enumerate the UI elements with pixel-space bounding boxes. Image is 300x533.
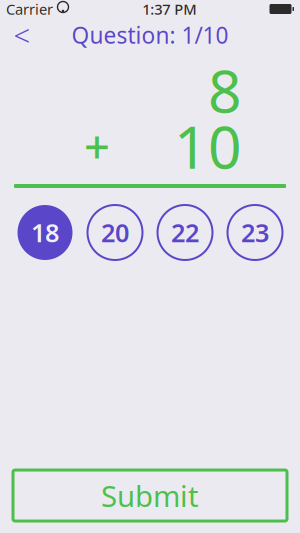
staticText: 1:37 PM <box>142 0 196 19</box>
staticText: Carrier <box>6 0 53 19</box>
button[interactable]: 22 <box>157 205 212 260</box>
staticText: 18 <box>31 216 59 249</box>
staticText: Question: 1/10 <box>71 20 228 50</box>
staticText: Submit <box>101 476 199 515</box>
staticText: 22 <box>171 216 199 249</box>
staticText: 8 <box>208 51 242 129</box>
button[interactable]: 18 <box>17 205 72 260</box>
staticText: + <box>84 116 110 176</box>
button[interactable]: Submit <box>13 470 287 521</box>
button[interactable]: 23 <box>227 205 282 260</box>
staticText: 23 <box>241 216 269 249</box>
button[interactable]: Back <box>0 18 44 52</box>
staticText: 20 <box>101 216 129 249</box>
staticText: < <box>13 15 30 54</box>
button[interactable]: 20 <box>87 205 142 260</box>
staticText: 10 <box>174 107 242 185</box>
